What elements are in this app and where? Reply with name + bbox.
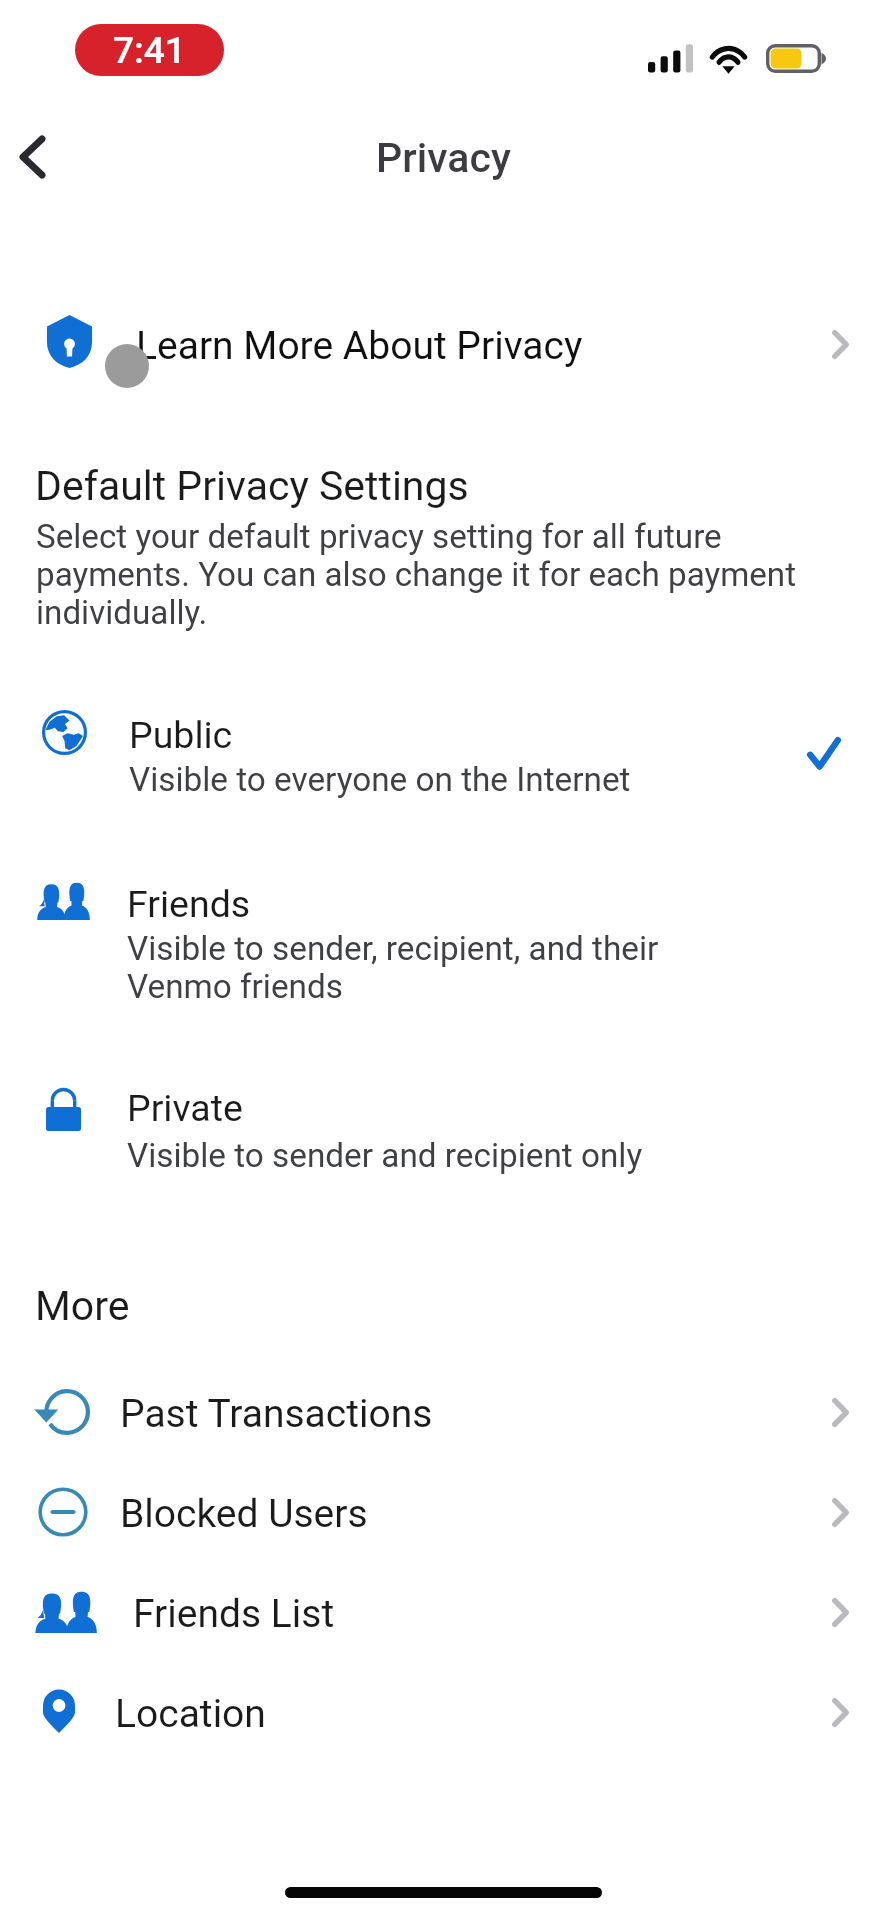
staticText: Past Transactions	[120, 1391, 433, 1437]
staticText: Visible to sender and recipient only	[127, 1136, 643, 1175]
staticText: Private	[127, 1086, 243, 1130]
staticText: Learn More About Privacy	[136, 323, 583, 369]
button[interactable]: Private	[0, 1073, 886, 1183]
staticText: 7:41	[113, 29, 186, 72]
staticText: Privacy	[376, 134, 511, 182]
staticText: Select your default privacy setting for …	[36, 518, 826, 632]
staticText: Friends	[127, 882, 251, 926]
button[interactable]: Location	[0, 1668, 886, 1768]
staticText: Venmo friends	[127, 967, 343, 1006]
button[interactable]: Friends List	[0, 1568, 886, 1668]
staticText: Friends List	[133, 1591, 335, 1637]
staticText: Default Privacy Settings	[35, 462, 469, 510]
button[interactable]: Learn More About Privacy	[0, 300, 886, 390]
staticText: Location	[115, 1691, 266, 1737]
staticText: Public	[129, 713, 233, 757]
staticText: More	[35, 1282, 130, 1330]
staticText: Visible to sender, recipient, and their	[127, 929, 659, 968]
button[interactable]: Friends	[0, 869, 886, 1009]
staticText: Visible to everyone on the Internet	[129, 760, 631, 799]
button[interactable]: Back	[0, 121, 70, 193]
button[interactable]: Past Transactions	[0, 1368, 886, 1468]
staticText: Blocked Users	[120, 1491, 368, 1537]
button[interactable]: Blocked Users	[0, 1468, 886, 1568]
button[interactable]: Public	[0, 700, 886, 800]
